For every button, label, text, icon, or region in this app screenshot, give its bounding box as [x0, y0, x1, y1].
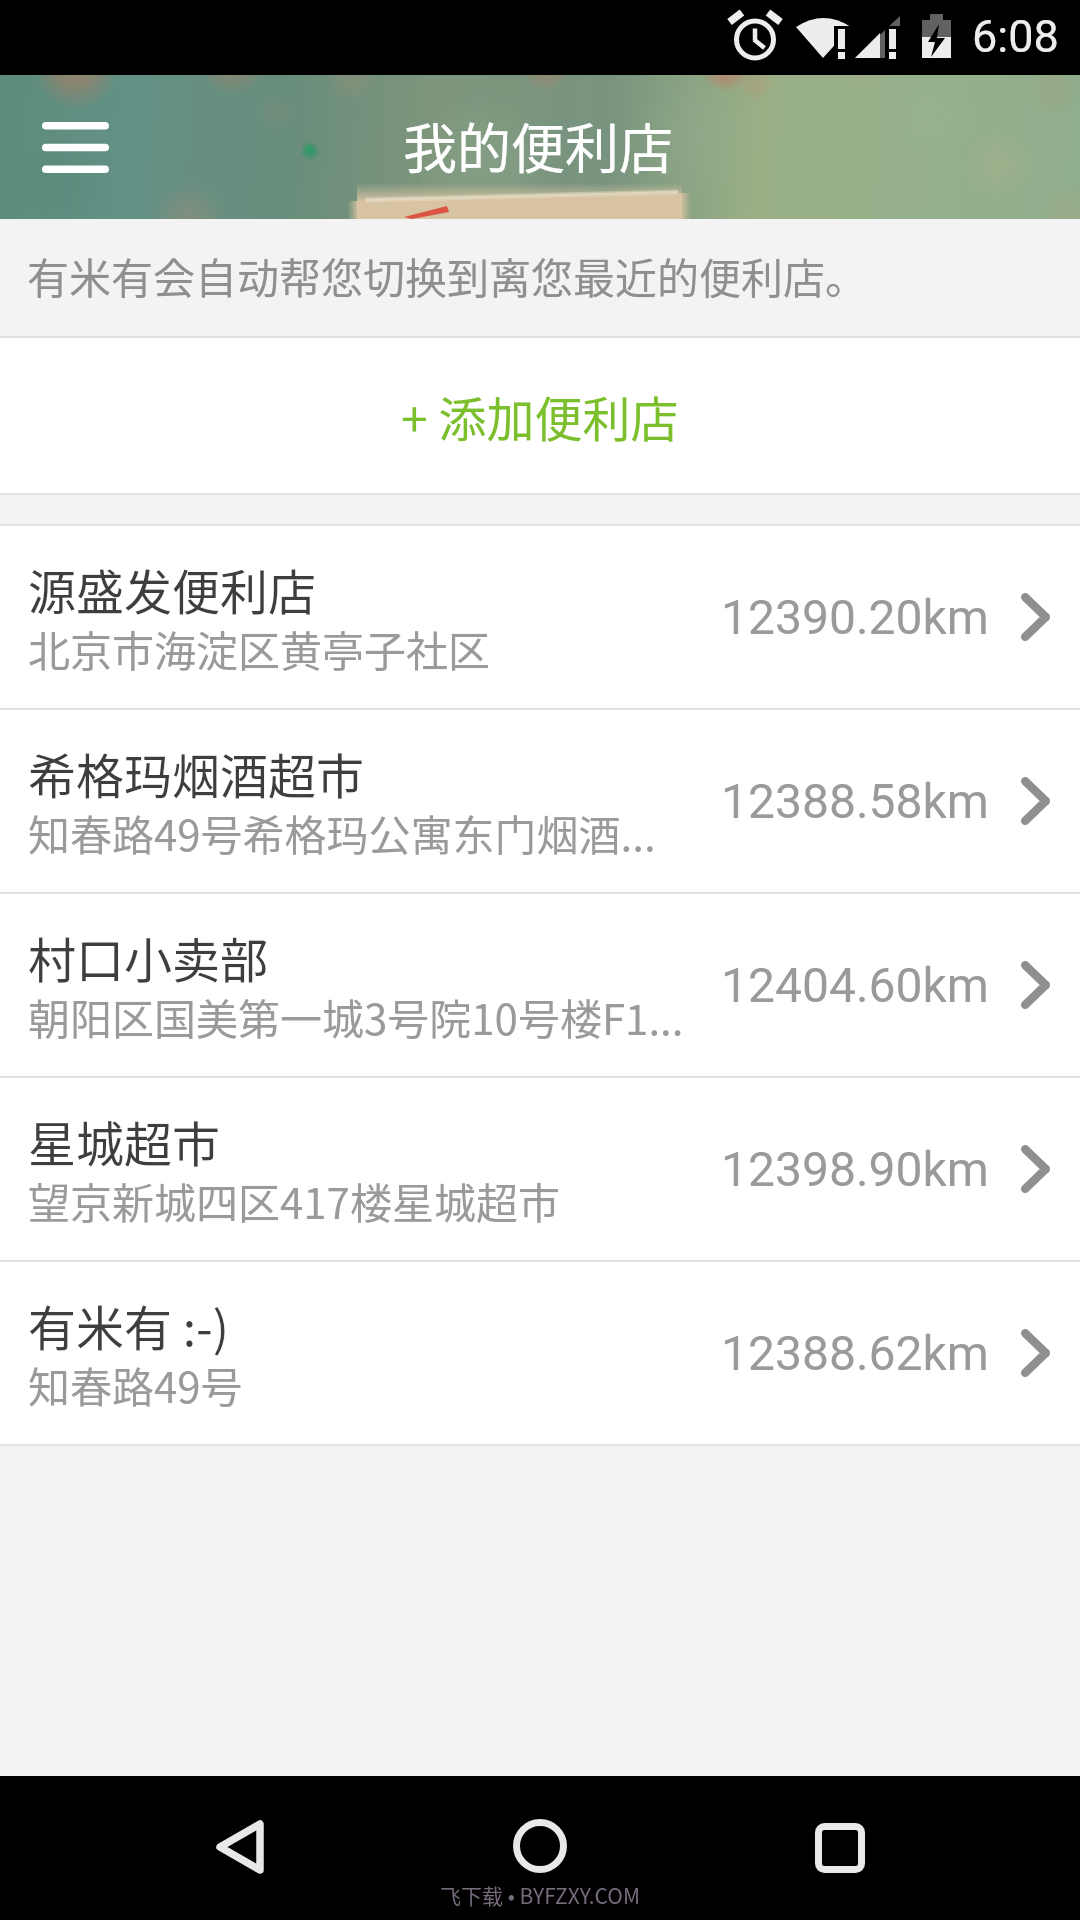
staticText: 知春路49号希格玛公寓东门烟酒...: [28, 802, 656, 863]
staticText: 有米有 :-): [28, 1290, 229, 1360]
staticText: 朝阳区国美第一城3号院10号楼F1...: [28, 986, 684, 1047]
staticText: 12388.58km: [721, 773, 989, 829]
button[interactable]: 源盛发便利店: [0, 526, 1080, 708]
button[interactable]: 村口小卖部: [0, 894, 1080, 1076]
button[interactable]: Recent apps: [780, 1788, 900, 1908]
staticText: 源盛发便利店: [28, 554, 317, 624]
staticText: + 添加便利店: [401, 381, 679, 451]
staticText: 6:08: [972, 10, 1059, 63]
staticText: 有米有会自动帮您切换到离您最近的便利店。: [27, 245, 868, 306]
button[interactable]: Open navigation menu: [13, 85, 137, 209]
staticText: 12388.62km: [721, 1325, 989, 1381]
button[interactable]: + 添加便利店: [0, 338, 1080, 493]
button[interactable]: 星城超市: [0, 1078, 1080, 1260]
staticText: 飞下载 • BYFZXY.COM: [440, 1880, 640, 1910]
button[interactable]: 有米有 :-): [0, 1262, 1080, 1444]
staticText: 望京新城四区417楼星城超市: [28, 1170, 560, 1231]
staticText: 星城超市: [28, 1106, 221, 1176]
staticText: 村口小卖部: [28, 922, 269, 992]
staticText: 希格玛烟酒超市: [28, 738, 365, 808]
staticText: 12390.20km: [721, 589, 989, 645]
staticText: 北京市海淀区黄亭子社区: [28, 618, 491, 679]
button[interactable]: Back: [180, 1787, 300, 1907]
button[interactable]: 希格玛烟酒超市: [0, 710, 1080, 892]
button[interactable]: Home: [480, 1786, 600, 1906]
staticText: 我的便利店: [403, 106, 673, 184]
staticText: 12404.60km: [721, 957, 989, 1013]
staticText: 知春路49号: [28, 1354, 243, 1415]
staticText: 12398.90km: [721, 1141, 989, 1197]
